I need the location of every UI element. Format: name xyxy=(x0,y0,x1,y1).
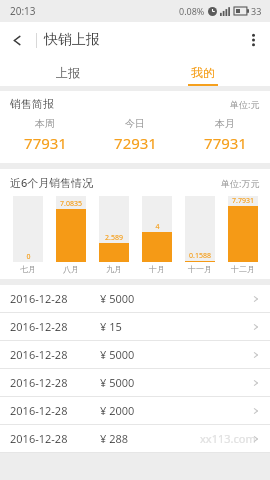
staticText: ¥ 5000 xyxy=(100,375,135,390)
button[interactable]: 7.0835 xyxy=(49,196,92,274)
button[interactable]: 7.7931 xyxy=(221,196,264,274)
staticText: 4 xyxy=(155,222,160,232)
staticText: ¥ 15 xyxy=(100,319,122,334)
button[interactable]: 本周 xyxy=(0,117,90,153)
button[interactable]: 本月 xyxy=(180,117,270,153)
staticText: 7.7931 xyxy=(232,196,254,206)
staticText: 本月 xyxy=(215,117,235,130)
staticText: ¥ 2000 xyxy=(100,403,135,418)
staticText: ¥ 5000 xyxy=(100,291,135,306)
staticText: 0 xyxy=(26,252,31,262)
staticText: 上报 xyxy=(56,65,80,80)
button[interactable]: 2016-12-28 xyxy=(0,369,270,396)
button[interactable]: 2016-12-28 xyxy=(0,425,270,452)
staticText: 2.589 xyxy=(105,233,123,243)
staticText: 本周 xyxy=(35,117,55,130)
staticText: 72931 xyxy=(114,133,157,153)
staticText: 近6个月销售情况 xyxy=(10,175,94,190)
staticText: 十一月 xyxy=(188,264,212,274)
staticText: 八月 xyxy=(63,264,79,274)
staticText: 2016-12-28 xyxy=(10,375,68,390)
button[interactable]: 0.1588 xyxy=(178,196,221,274)
staticText: 七月 xyxy=(20,264,36,274)
staticText: 单位:元 xyxy=(230,98,260,110)
staticText: 2016-12-28 xyxy=(10,347,68,362)
staticText: ¥ 288 xyxy=(100,431,129,446)
staticText: xx113.com xyxy=(200,431,256,446)
staticText: 77931 xyxy=(24,133,67,153)
button[interactable]: 今日 xyxy=(90,117,180,153)
button[interactable]: 上报 xyxy=(0,58,135,86)
staticText: 7.0835 xyxy=(60,199,82,209)
staticText: 九月 xyxy=(106,264,122,274)
staticText: 销售简报 xyxy=(10,97,54,111)
staticText: 0.08% xyxy=(179,5,205,17)
staticText: 今日 xyxy=(125,117,145,130)
staticText: 我的 xyxy=(191,65,215,80)
button[interactable]: 4 xyxy=(135,196,178,274)
staticText: 2016-12-28 xyxy=(10,291,68,306)
button[interactable]: 2016-12-28 xyxy=(0,313,270,340)
staticText: 33 xyxy=(251,5,262,17)
staticText: 2016-12-28 xyxy=(10,431,68,446)
staticText: 快销上报 xyxy=(44,31,100,49)
button[interactable]: Back xyxy=(0,23,34,57)
staticText: 0.1588 xyxy=(189,251,211,261)
button[interactable]: 2.589 xyxy=(92,196,135,274)
button[interactable]: 2016-12-28 xyxy=(0,397,270,424)
staticText: 2016-12-28 xyxy=(10,319,68,334)
button[interactable]: 2016-12-28 xyxy=(0,341,270,368)
staticText: 77931 xyxy=(204,133,247,153)
staticText: 十月 xyxy=(149,264,165,274)
staticText: 20:13 xyxy=(10,4,36,18)
button[interactable]: 2016-12-28 xyxy=(0,285,270,312)
staticText: ¥ 5000 xyxy=(100,347,135,362)
staticText: 十二月 xyxy=(231,264,255,274)
button[interactable]: 0 xyxy=(6,196,49,274)
button[interactable]: More options xyxy=(236,23,270,57)
staticText: 2016-12-28 xyxy=(10,403,68,418)
button[interactable]: 我的 xyxy=(135,58,270,86)
staticText: 单位:万元 xyxy=(221,177,260,189)
